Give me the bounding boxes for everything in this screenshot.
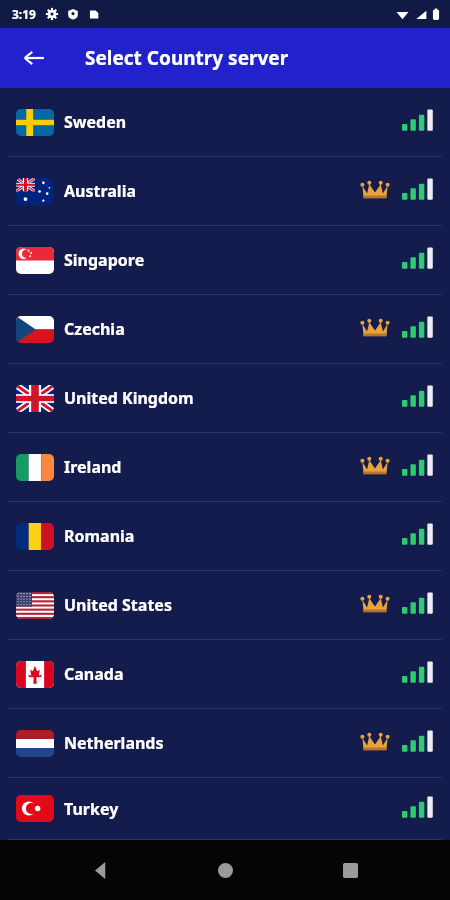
button[interactable]: United States	[0, 571, 450, 640]
staticText: Sweden	[64, 111, 127, 133]
staticText: Australia	[64, 180, 137, 202]
staticText: Select Country server	[85, 45, 289, 71]
button[interactable]: Sweden	[0, 88, 450, 157]
button[interactable]: Australia	[0, 157, 450, 226]
button[interactable]: Romania	[0, 502, 450, 571]
button[interactable]: Back	[77, 846, 125, 894]
staticText: Netherlands	[64, 732, 164, 754]
staticText: Romania	[64, 525, 135, 547]
button[interactable]: Ireland	[0, 433, 450, 502]
staticText: United States	[64, 594, 172, 616]
button[interactable]: Canada	[0, 640, 450, 709]
staticText: Turkey	[64, 798, 119, 820]
button[interactable]: Back	[16, 40, 52, 76]
button[interactable]: Recent apps	[326, 846, 374, 894]
staticText: Ireland	[64, 456, 122, 478]
staticText: 3:19	[12, 6, 36, 22]
button[interactable]: Singapore	[0, 226, 450, 295]
button[interactable]: United Kingdom	[0, 364, 450, 433]
button[interactable]: Turkey	[0, 778, 450, 840]
button[interactable]: Home	[201, 846, 249, 894]
staticText: Canada	[64, 663, 124, 685]
staticText: Czechia	[64, 318, 125, 340]
button[interactable]: Netherlands	[0, 709, 450, 778]
staticText: United Kingdom	[64, 387, 194, 409]
staticText: Singapore	[64, 249, 145, 271]
button[interactable]: Czechia	[0, 295, 450, 364]
